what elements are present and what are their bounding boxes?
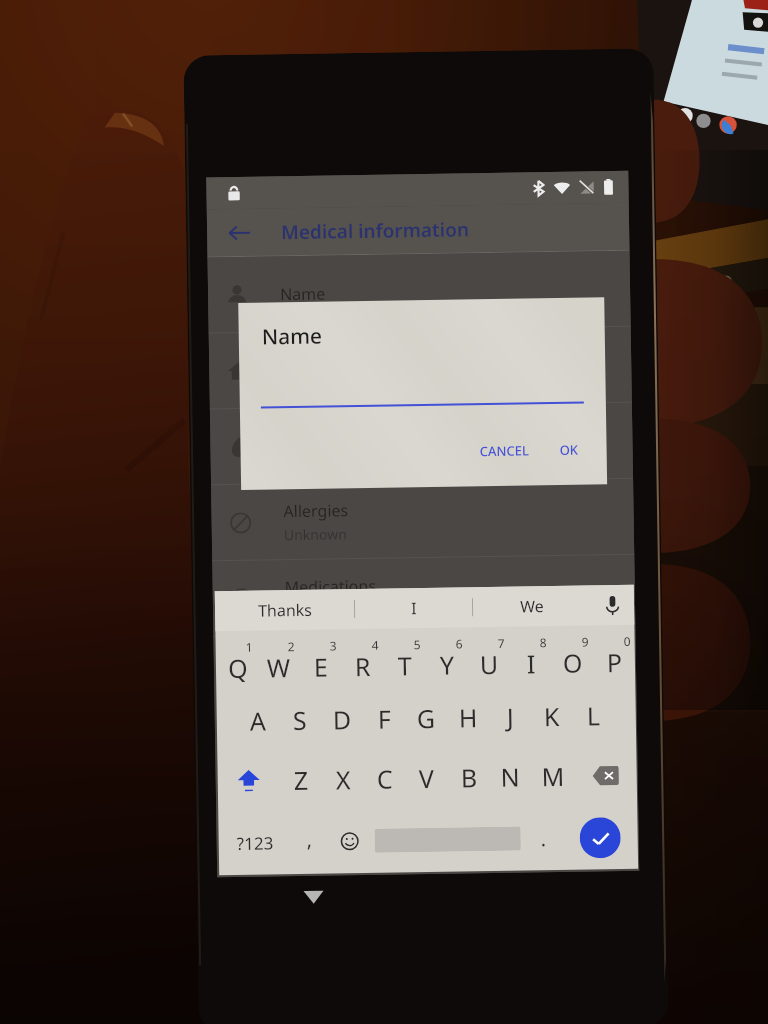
button[interactable]: M [531, 746, 574, 806]
staticText: C [376, 762, 393, 796]
staticText: OK [559, 441, 579, 459]
staticText: V [418, 761, 435, 795]
button[interactable]: Backspace [573, 745, 637, 806]
staticText: 0 [623, 633, 631, 649]
button[interactable]: A [236, 690, 279, 751]
button[interactable]: Q [215, 631, 257, 691]
staticText: 3 [329, 637, 337, 653]
staticText: N [500, 759, 521, 794]
button[interactable]: ?123 [218, 810, 291, 875]
staticText: B [460, 760, 478, 794]
staticText: O [563, 646, 583, 680]
button[interactable]: . [524, 806, 563, 870]
button[interactable]: I [355, 587, 472, 629]
staticText: 1 [245, 639, 253, 655]
button[interactable]: CANCEL [471, 433, 538, 468]
button[interactable]: Address [209, 327, 632, 408]
button[interactable]: We [473, 585, 590, 627]
button[interactable]: I [508, 626, 551, 687]
button[interactable]: Z [279, 750, 322, 810]
staticText: R [355, 649, 371, 683]
button[interactable]: C [363, 748, 406, 809]
button[interactable]: G [404, 688, 447, 748]
button[interactable]: Medications [212, 555, 635, 636]
button[interactable]: F [362, 688, 405, 749]
button[interactable]: H [446, 687, 489, 748]
staticText: 7 [497, 635, 505, 651]
staticText: 4 [371, 637, 379, 653]
staticText: D [332, 702, 352, 736]
staticText: Medical information [281, 216, 469, 245]
staticText: , [306, 826, 313, 853]
staticText: E [314, 650, 328, 684]
button[interactable]: E [298, 629, 341, 690]
staticText: I [411, 597, 417, 619]
button[interactable]: W [256, 630, 299, 691]
staticText: CANCEL [479, 441, 530, 460]
button[interactable]: Allergies [211, 479, 634, 560]
button[interactable]: Back [215, 208, 263, 256]
staticText: L [586, 698, 601, 732]
button[interactable]: O [550, 625, 593, 686]
button[interactable]: , [290, 810, 329, 874]
staticText: Name [280, 282, 326, 305]
staticText: H [458, 700, 478, 734]
button[interactable]: P [592, 625, 635, 685]
button[interactable]: Y [424, 627, 467, 688]
staticText: 8 [539, 634, 547, 650]
staticText: Thanks [258, 599, 312, 622]
staticText: W [267, 650, 291, 684]
staticText: F [377, 702, 391, 736]
staticText: A [249, 703, 266, 738]
button[interactable]: T [382, 628, 425, 689]
staticText: 2 [287, 638, 295, 654]
staticText: . [540, 825, 547, 852]
staticText: K [543, 699, 560, 733]
staticText: T [398, 648, 412, 682]
button[interactable]: U [466, 627, 509, 687]
staticText: Name [261, 322, 323, 352]
staticText: S [292, 703, 307, 737]
button[interactable]: OK [551, 432, 587, 467]
button[interactable]: Shift [217, 750, 280, 811]
button[interactable]: Thanks [215, 589, 354, 631]
button[interactable]: B [447, 747, 490, 808]
button[interactable]: K [530, 686, 573, 746]
button[interactable]: Hide keyboard [293, 881, 334, 912]
button[interactable]: Done [562, 805, 638, 870]
staticText: 5 [413, 636, 421, 652]
staticText: M [541, 759, 565, 793]
button[interactable]: Blood type [210, 403, 633, 484]
button[interactable]: D [320, 689, 363, 750]
button[interactable]: R [340, 629, 383, 689]
staticText: P [607, 645, 623, 679]
staticText: Z [293, 763, 309, 797]
staticText: Allergies [283, 499, 349, 522]
button[interactable]: L [572, 685, 615, 746]
staticText: Y [440, 648, 455, 682]
staticText: 6 [455, 635, 463, 651]
button[interactable]: Emoji [328, 809, 371, 874]
staticText: I [527, 646, 536, 680]
button[interactable]: J [488, 686, 531, 747]
button[interactable]: S [278, 690, 321, 750]
button[interactable]: N [489, 746, 532, 807]
staticText: 9 [581, 633, 589, 650]
staticText: G [416, 701, 436, 735]
button[interactable]: Space [370, 806, 525, 873]
staticText: U [480, 647, 499, 681]
staticText: X [335, 762, 351, 796]
button[interactable]: X [321, 749, 364, 810]
staticText: J [506, 700, 514, 734]
button[interactable]: Name [207, 251, 631, 332]
staticText: Unknown [285, 600, 348, 620]
button[interactable]: V [405, 748, 448, 808]
staticText: ?123 [236, 831, 274, 855]
staticText: We [520, 595, 544, 618]
button[interactable]: Voice input [590, 585, 634, 625]
staticText: Q [228, 651, 248, 685]
staticText: Medications [284, 575, 377, 598]
